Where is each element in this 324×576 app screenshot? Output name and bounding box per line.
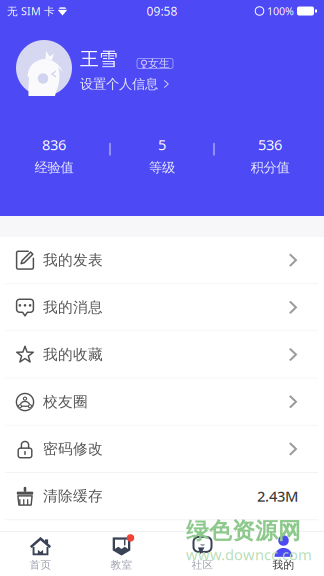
staticText: 836 bbox=[42, 135, 66, 154]
staticText: www.downcc.com bbox=[186, 545, 312, 564]
staticText: 2.43M bbox=[257, 486, 298, 506]
staticText: 经验值 bbox=[34, 159, 73, 176]
staticText: 校友圈 bbox=[43, 393, 88, 411]
button[interactable]: 首页 bbox=[0, 532, 81, 576]
button[interactable]: 社区 bbox=[162, 532, 243, 576]
staticText: 5 bbox=[158, 135, 166, 154]
button[interactable]: 清除缓存 bbox=[0, 473, 324, 520]
staticText: 教室 bbox=[110, 558, 132, 571]
staticText: 等级 bbox=[149, 159, 175, 176]
button[interactable]: 设置个人信息 bbox=[80, 75, 169, 93]
staticText: 设置个人信息 bbox=[80, 76, 158, 92]
button[interactable]: 我的 bbox=[243, 532, 324, 576]
staticText: 536 bbox=[258, 135, 282, 154]
staticText: 我的消息 bbox=[43, 298, 103, 316]
staticText: 无 SIM 卡 bbox=[7, 4, 55, 18]
staticText: 我的 bbox=[272, 558, 294, 571]
button[interactable]: 校友圈 bbox=[0, 379, 324, 426]
button[interactable]: 用户头像 bbox=[16, 40, 72, 96]
staticText: 100% bbox=[267, 4, 294, 18]
staticText: 王雪 bbox=[80, 47, 118, 70]
staticText: 首页 bbox=[29, 558, 51, 571]
staticText: 我的发表 bbox=[43, 251, 103, 269]
staticText: ♀女生 bbox=[140, 57, 170, 70]
button[interactable]: 我的消息 bbox=[0, 284, 324, 331]
staticText: 密码修改 bbox=[43, 440, 103, 458]
staticText: 积分值 bbox=[250, 159, 289, 176]
staticText: 09:58 bbox=[146, 3, 177, 19]
staticText: 社区 bbox=[191, 558, 213, 571]
button[interactable]: 密码修改 bbox=[0, 426, 324, 473]
staticText: 清除缓存 bbox=[43, 487, 103, 505]
staticText: 绿色资源网 bbox=[186, 517, 301, 545]
button[interactable]: 我的收藏 bbox=[0, 331, 324, 379]
button[interactable]: 我的发表 bbox=[0, 237, 324, 284]
button[interactable]: 教室 bbox=[81, 532, 162, 576]
staticText: 我的收藏 bbox=[43, 345, 103, 363]
